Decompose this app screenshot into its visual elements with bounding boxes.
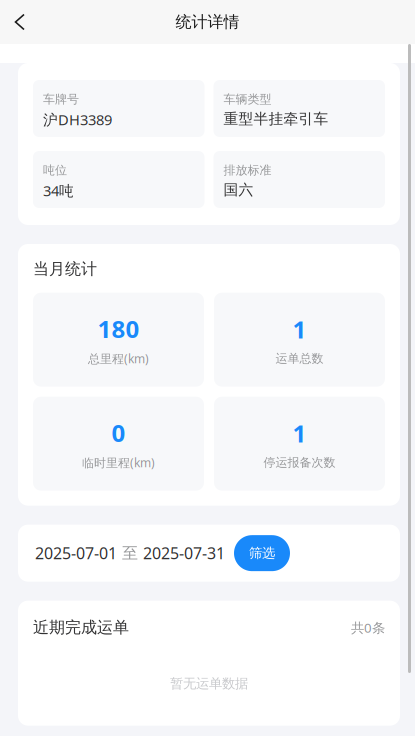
staticText: 运单总数	[275, 351, 323, 366]
staticText: 暂无运单数据	[170, 675, 248, 692]
staticText: 当月统计	[33, 259, 97, 279]
staticText: 筛选	[249, 545, 275, 561]
staticText: 共0条	[351, 619, 385, 636]
staticText: 至	[122, 543, 138, 563]
button[interactable]: 筛选	[234, 535, 290, 571]
button[interactable]: Back	[0, 0, 40, 44]
staticText: 停运报备次数	[263, 455, 335, 470]
staticText: 2025-07-01	[35, 542, 117, 564]
staticText: 临时里程(km)	[82, 455, 155, 470]
staticText: 180	[97, 313, 139, 345]
staticText: 近期完成运单	[33, 618, 129, 637]
staticText: 吨位	[43, 163, 67, 178]
staticText: 车牌号	[43, 92, 79, 107]
staticText: 0	[111, 417, 125, 449]
staticText: 车辆类型	[223, 92, 271, 107]
staticText: 统计详情	[175, 12, 239, 32]
staticText: 重型半挂牵引车	[223, 110, 328, 128]
staticText: 34吨	[43, 181, 74, 200]
button[interactable]: 2025-07-31	[143, 542, 225, 564]
staticText: 沪DH3389	[43, 110, 112, 129]
staticText: 国六	[223, 181, 253, 199]
button[interactable]: 2025-07-01	[35, 542, 117, 564]
staticText: 排放标准	[223, 163, 271, 178]
staticText: 1	[292, 417, 306, 449]
staticText: 1	[292, 313, 306, 345]
staticText: 总里程(km)	[88, 351, 149, 366]
staticText: 2025-07-31	[143, 542, 225, 564]
